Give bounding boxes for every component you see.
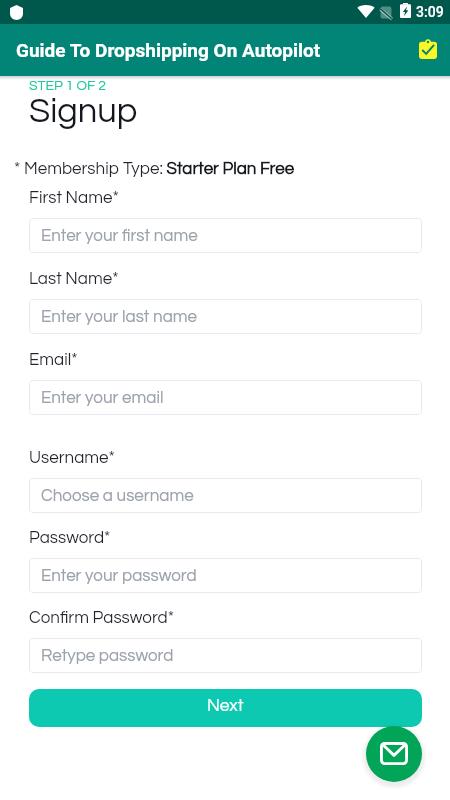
staticText: 3:09 — [416, 4, 444, 20]
staticText: STEP 1 OF 2 — [29, 79, 106, 93]
staticText: Password* — [29, 529, 111, 547]
staticText: Signup — [29, 94, 138, 130]
staticText: Enter your password — [41, 567, 197, 585]
staticText: Next — [207, 697, 244, 715]
staticText: Guide To Dropshipping On Autopilot — [16, 39, 321, 61]
staticText: Choose a username — [41, 487, 194, 505]
button[interactable]: Retype password — [29, 638, 422, 673]
button[interactable]: Enter your last name — [29, 299, 422, 334]
staticText: First Name* — [29, 189, 119, 207]
staticText: * Membership Type: Starter Plan Free — [14, 160, 295, 178]
button[interactable]: Enter your password — [29, 558, 422, 593]
staticText: Enter your email — [41, 389, 164, 407]
button[interactable]: Send message — [366, 726, 422, 782]
button[interactable]: Next — [29, 689, 422, 727]
button[interactable]: Assignment — [411, 33, 445, 67]
staticText: Retype password — [41, 647, 174, 665]
staticText: Enter your last name — [41, 308, 197, 326]
staticText: Last Name* — [29, 270, 119, 288]
button[interactable]: Choose a username — [29, 478, 422, 513]
staticText: Email* — [29, 351, 78, 369]
button[interactable]: Enter your email — [29, 380, 422, 415]
staticText: Enter your first name — [41, 227, 198, 245]
staticText: Confirm Password* — [29, 609, 174, 627]
button[interactable]: Enter your first name — [29, 218, 422, 253]
staticText: Username* — [29, 449, 115, 467]
